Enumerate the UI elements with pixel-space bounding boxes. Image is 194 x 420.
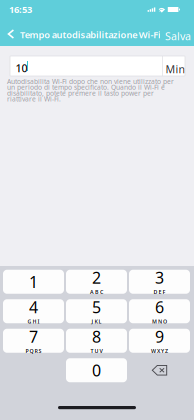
staticText: 7 <box>29 326 38 347</box>
staticText: 9 <box>155 326 164 347</box>
button[interactable]: 2 <box>66 270 127 294</box>
button[interactable]: 7 <box>3 329 64 353</box>
button[interactable]: 4 <box>3 299 64 323</box>
button[interactable]: 1 <box>3 270 64 294</box>
staticText: D E F <box>153 288 165 295</box>
staticText: G H I <box>27 318 39 325</box>
staticText: 1 <box>29 271 38 292</box>
button[interactable]: Back <box>3 24 19 44</box>
staticText: T U V <box>90 347 102 354</box>
button[interactable]: 9 <box>129 329 190 353</box>
staticText: 10 <box>15 61 27 75</box>
staticText: 3 <box>155 267 164 288</box>
button[interactable]: Salva <box>162 25 194 47</box>
staticText: M N O <box>152 318 167 325</box>
button[interactable]: 5 <box>66 299 127 323</box>
staticText: A B C <box>90 288 103 295</box>
button[interactable]: 3 <box>129 270 190 294</box>
button[interactable]: 6 <box>129 299 190 323</box>
staticText: P Q R S <box>25 347 41 354</box>
staticText: 0 <box>92 360 101 381</box>
staticText: 16:53 <box>9 3 32 16</box>
staticText: Tempo autodisabilitazione Wi-Fi <box>20 28 161 41</box>
staticText: Autodisabilita Wi-Fi dopo che non viene … <box>7 77 174 103</box>
staticText: 8 <box>92 326 101 347</box>
button[interactable]: Delete <box>129 358 190 382</box>
staticText: J K L <box>91 318 101 325</box>
button[interactable]: 0 <box>66 358 127 382</box>
staticText: 2 <box>92 267 101 288</box>
staticText: 4 <box>29 296 38 318</box>
button[interactable]: 8 <box>66 329 127 353</box>
staticText: 6 <box>155 296 164 318</box>
staticText: Min <box>165 62 185 76</box>
staticText: 5 <box>92 296 101 318</box>
staticText: Salva <box>165 29 191 43</box>
staticText: W X Y Z <box>151 347 168 354</box>
